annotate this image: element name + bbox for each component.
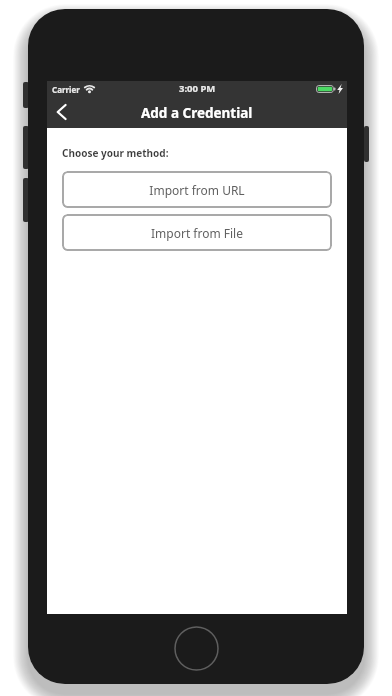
staticText: Import from File [151,225,243,241]
button[interactable]: Back [47,96,79,128]
button[interactable]: Import from File [62,214,332,251]
staticText: Add a Credential [141,104,253,122]
button[interactable]: Import from URL [62,171,332,208]
button[interactable]: Home [174,626,219,671]
staticText: Choose your method: [62,146,169,160]
staticText: 3:00 PM [179,82,216,95]
staticText: Carrier [52,84,80,95]
staticText: Import from URL [149,182,245,198]
